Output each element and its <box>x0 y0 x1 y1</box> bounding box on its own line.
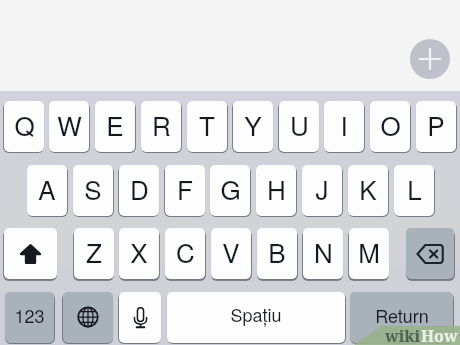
staticText: I <box>340 106 348 143</box>
button[interactable]: Spațiu <box>167 292 345 343</box>
staticText: H <box>267 170 286 207</box>
staticText: Q <box>14 106 35 143</box>
button[interactable]: 123 <box>5 292 54 343</box>
button[interactable]: Z <box>74 228 114 279</box>
staticText: D <box>130 170 149 207</box>
button[interactable]: I <box>324 101 364 152</box>
button[interactable]: D <box>119 165 159 216</box>
staticText: B <box>268 233 286 270</box>
staticText: N <box>314 233 333 270</box>
staticText: R <box>152 106 171 143</box>
button[interactable]: K <box>348 165 388 216</box>
staticText: M <box>358 233 380 270</box>
staticText: Y <box>244 106 262 143</box>
button[interactable]: Shift <box>4 228 57 279</box>
staticText: J <box>315 170 329 207</box>
staticText: F <box>177 170 193 207</box>
button[interactable]: G <box>210 165 250 216</box>
staticText: W <box>57 106 82 143</box>
staticText: C <box>176 233 195 270</box>
staticText: G <box>220 170 241 207</box>
button[interactable]: A <box>27 165 67 216</box>
button[interactable]: U <box>279 101 319 152</box>
staticText: Return <box>375 302 429 328</box>
button[interactable]: W <box>49 101 89 152</box>
button[interactable]: Add <box>410 39 450 79</box>
button[interactable]: C <box>165 228 205 279</box>
staticText: V <box>222 233 240 270</box>
button[interactable]: N <box>303 228 343 279</box>
staticText: E <box>106 106 124 143</box>
staticText: S <box>84 170 102 207</box>
staticText: Spațiu <box>230 301 282 327</box>
button[interactable]: Y <box>233 101 273 152</box>
button[interactable]: B <box>257 228 297 279</box>
staticText: 123 <box>14 302 45 328</box>
button[interactable]: Return <box>350 292 453 343</box>
button[interactable]: M <box>349 228 389 279</box>
staticText: T <box>199 106 215 143</box>
button[interactable]: Switch keyboard <box>63 292 113 343</box>
button[interactable]: E <box>95 101 135 152</box>
button[interactable]: L <box>394 165 434 216</box>
staticText: How <box>421 325 458 345</box>
button[interactable]: R <box>141 101 181 152</box>
staticText: K <box>359 170 377 207</box>
staticText: P <box>427 106 445 143</box>
button[interactable]: Dictate <box>119 292 161 343</box>
button[interactable]: Q <box>4 101 44 152</box>
staticText: Z <box>86 233 102 270</box>
button[interactable]: X <box>119 228 159 279</box>
staticText: O <box>380 106 401 143</box>
button[interactable]: Backspace <box>406 228 454 279</box>
staticText: U <box>290 106 309 143</box>
button[interactable]: P <box>416 101 456 152</box>
button[interactable]: S <box>73 165 113 216</box>
button[interactable]: H <box>256 165 296 216</box>
staticText: X <box>130 233 148 270</box>
button[interactable]: J <box>302 165 342 216</box>
staticText: L <box>407 170 422 207</box>
button[interactable]: V <box>211 228 251 279</box>
button[interactable]: F <box>165 165 205 216</box>
button[interactable]: T <box>187 101 227 152</box>
button[interactable]: O <box>370 101 410 152</box>
staticText: wiki <box>385 325 421 345</box>
staticText: A <box>38 170 56 207</box>
